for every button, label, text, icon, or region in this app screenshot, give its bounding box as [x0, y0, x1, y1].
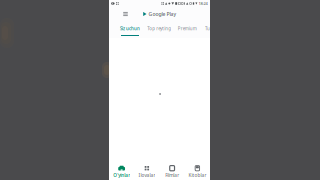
staticText: O'yinlar — [113, 172, 130, 178]
button[interactable]: Filmlar — [159, 161, 185, 180]
button[interactable]: Tu — [205, 24, 210, 36]
staticText: Filmlar — [165, 172, 179, 178]
staticText: Google Play — [149, 10, 177, 17]
staticText: Premium — [178, 25, 197, 31]
button[interactable]: Google Play — [142, 7, 177, 21]
staticText: Kitoblar — [188, 172, 206, 178]
button[interactable]: Ilovalar — [134, 161, 159, 180]
staticText: Tu — [205, 25, 210, 31]
button[interactable]: Open navigation menu — [120, 7, 131, 21]
button[interactable]: O'yinlar — [109, 161, 134, 180]
staticText: Top reyting — [147, 25, 171, 31]
button[interactable]: Kitoblar — [185, 161, 210, 180]
button[interactable]: Top reyting — [149, 24, 170, 36]
button[interactable]: Siz uchun — [121, 24, 139, 36]
button[interactable]: Premium — [179, 24, 195, 36]
staticText: Ilovalar — [138, 172, 155, 178]
staticText: Siz uchun — [120, 25, 140, 31]
staticText: 18:24 — [198, 1, 207, 6]
